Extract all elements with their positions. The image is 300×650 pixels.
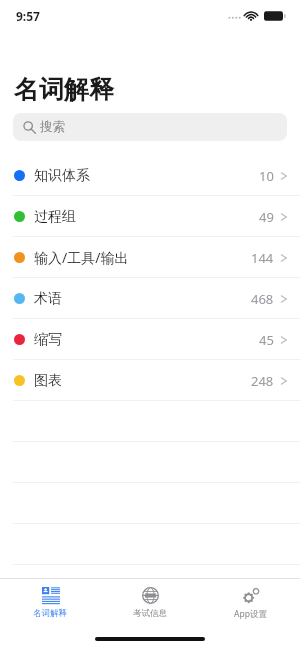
staticText: 考试信息 — [133, 608, 167, 619]
button[interactable]: 搜索 — [13, 113, 287, 141]
button[interactable]: 术语 — [0, 278, 300, 319]
button[interactable]: 知识体系 — [0, 155, 300, 196]
staticText: 输入/工具/输出 — [34, 248, 129, 267]
button[interactable]: 过程组 — [0, 196, 300, 237]
button[interactable]: 考试信息 — [100, 579, 200, 625]
staticText: 468 — [251, 290, 274, 308]
button[interactable]: 输入/工具/输出 — [0, 237, 300, 278]
button[interactable]: 名词解释 — [0, 579, 100, 625]
staticText: 名词解释 — [14, 74, 114, 105]
staticText: 过程组 — [34, 208, 76, 226]
button[interactable]: App设置 — [200, 579, 300, 625]
staticText: 名词解释 — [33, 608, 67, 619]
staticText: 搜索 — [40, 119, 65, 135]
button[interactable]: 缩写 — [0, 319, 300, 360]
staticText: 知识体系 — [34, 167, 90, 185]
staticText: 144 — [251, 249, 274, 267]
staticText: 缩写 — [34, 331, 62, 349]
staticText: 术语 — [34, 290, 62, 308]
staticText: 10 — [259, 167, 274, 185]
staticText: 49 — [259, 208, 274, 226]
staticText: 45 — [259, 331, 274, 349]
staticText: 9:57 — [16, 8, 40, 24]
staticText: 248 — [251, 372, 274, 390]
staticText: App设置 — [234, 608, 267, 620]
button[interactable]: 图表 — [0, 360, 300, 401]
staticText: 图表 — [34, 372, 62, 390]
